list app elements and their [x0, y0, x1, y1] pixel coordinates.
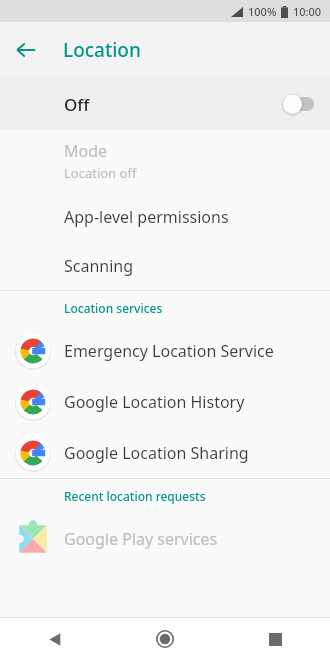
- button[interactable]: Scanning: [0, 241, 330, 290]
- staticText: Google Location Sharing: [64, 442, 249, 464]
- staticText: 10:00: [293, 4, 322, 19]
- staticText: Google Play services: [64, 528, 218, 550]
- button[interactable]: Google Location History: [0, 376, 330, 427]
- staticText: Mode: [64, 140, 108, 162]
- staticText: Location: [63, 37, 141, 63]
- staticText: Emergency Location Service: [64, 340, 274, 362]
- staticText: Recent location requests: [64, 488, 206, 504]
- staticText: 100%: [248, 4, 277, 19]
- staticText: Scanning: [64, 255, 134, 277]
- button[interactable]: Home: [110, 618, 220, 660]
- button[interactable]: Recents: [220, 618, 330, 660]
- button[interactable]: Emergency Location Service: [0, 325, 330, 376]
- button[interactable]: Google Play services: [0, 513, 330, 564]
- button[interactable]: App-level permissions: [0, 192, 330, 241]
- button[interactable]: Off: [0, 78, 330, 130]
- staticText: Location services: [64, 300, 163, 316]
- staticText: Location off: [64, 164, 137, 182]
- staticText: Off: [64, 93, 90, 116]
- button[interactable]: Google Location Sharing: [0, 427, 330, 478]
- staticText: Google Location History: [64, 391, 245, 413]
- button[interactable]: Back: [0, 618, 110, 660]
- button[interactable]: Mode: [0, 130, 330, 192]
- button[interactable]: Back: [6, 30, 46, 70]
- staticText: App-level permissions: [64, 206, 229, 228]
